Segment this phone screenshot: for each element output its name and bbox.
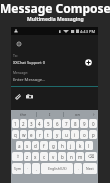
button[interactable]: s [24,141,31,150]
button[interactable]: 6 [53,119,61,128]
button[interactable]: I [37,110,63,118]
staticText: n [70,154,73,160]
staticText: d [34,143,37,149]
staticText: f [43,143,45,149]
staticText: 0 [92,121,95,127]
staticText: XXChat Support 0 [13,60,45,65]
button[interactable]: 9 [80,119,88,128]
staticText: c [43,154,46,160]
staticText: 4:43 PM [80,29,96,34]
staticText: on [75,112,80,117]
button[interactable]: the [11,110,36,118]
staticText: a [18,143,21,149]
staticText: k [79,143,82,149]
button[interactable]: 0 [89,119,97,128]
button[interactable]: , [32,163,40,174]
button[interactable]: More suggestions [90,110,98,118]
button[interactable]: k [76,141,84,150]
staticText: r [39,132,41,138]
staticText: ⌫ [88,154,95,159]
staticText: Next [86,166,94,171]
button[interactable]: 5 [44,119,52,128]
button[interactable]: 4 [36,119,43,128]
button[interactable]: a [16,141,23,150]
button[interactable]: Take photo [25,92,34,101]
staticText: ⇧ [16,154,20,159]
staticText: 8 [74,121,77,127]
button[interactable]: 7 [62,119,70,128]
button[interactable]: l [85,141,93,150]
button[interactable]: Next [83,163,97,174]
staticText: i [74,132,76,138]
staticText: h [61,143,64,149]
button[interactable]: c [40,152,48,161]
staticText: . [78,166,79,171]
button[interactable]: d [32,141,39,150]
button[interactable]: h [58,141,66,150]
staticText: To: [13,53,18,58]
button[interactable]: j [67,141,75,150]
staticText: x [34,154,37,160]
button[interactable]: e [28,130,35,139]
button[interactable]: 8 [71,119,79,128]
staticText: · [27,166,28,171]
button[interactable]: 3 [28,119,35,128]
button[interactable]: Sym [12,163,23,174]
button[interactable]: i [71,130,79,139]
button[interactable]: 2 [20,119,27,128]
button[interactable]: w [20,130,27,139]
button[interactable]: Menu [14,39,23,48]
button[interactable]: · [24,163,31,174]
staticText: 4 [38,121,41,127]
button[interactable]: m [76,152,84,161]
staticText: e [30,132,33,138]
button[interactable]: t [44,130,52,139]
staticText: I [49,112,51,117]
staticText: the [20,112,27,117]
button[interactable]: x [32,152,39,161]
button[interactable]: r [36,130,43,139]
staticText: Multimedia Messaging [27,16,84,23]
staticText: y [56,132,59,138]
staticText: 5 [47,121,50,127]
staticText: z [26,154,29,160]
staticText: v [52,154,55,160]
staticText: 7 [65,121,68,127]
staticText: Enter Message... [13,77,46,83]
staticText: s [26,143,29,149]
button[interactable]: on [64,110,90,118]
staticText: q [14,132,17,138]
button[interactable]: n [67,152,75,161]
button[interactable]: o [80,130,88,139]
staticText: l [88,143,90,149]
staticText: English(US) [48,166,67,171]
staticText: Message: [13,70,29,75]
staticText: o [83,132,86,138]
button[interactable]: 1 [12,119,19,128]
staticText: u [65,132,68,138]
button[interactable]: v [49,152,57,161]
staticText: 6 [56,121,59,127]
button[interactable]: . [74,163,82,174]
staticText: 3 [30,121,33,127]
button[interactable]: English(US) [41,163,73,174]
staticText: Message Compose [0,0,110,16]
button[interactable]: ⌫ [85,152,97,161]
staticText: m [78,154,83,160]
button[interactable]: u [62,130,70,139]
button[interactable]: b [58,152,66,161]
button[interactable]: f [40,141,48,150]
staticText: p [92,132,95,138]
button[interactable]: g [49,141,57,150]
staticText: t [47,132,49,138]
button[interactable]: q [12,130,19,139]
button[interactable]: ⇧ [12,152,23,161]
staticText: 9 [83,121,86,127]
button[interactable]: z [24,152,31,161]
staticText: w [22,132,26,138]
button[interactable]: p [89,130,97,139]
button[interactable]: y [53,130,61,139]
button[interactable]: Attach file [13,92,22,101]
staticText: , [36,166,37,171]
button[interactable]: Add recipient [83,57,94,68]
